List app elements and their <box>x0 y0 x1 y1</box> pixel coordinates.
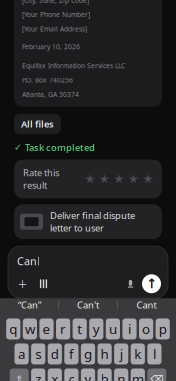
button[interactable]: p <box>156 318 170 339</box>
staticText: [City, State, Zip Code] <box>22 0 89 5</box>
button[interactable]: s <box>31 343 45 364</box>
staticText: w <box>25 320 35 338</box>
button[interactable]: t <box>73 318 87 339</box>
staticText: Equifax Information Services LLC <box>22 61 125 70</box>
staticText: Deliver final dispute letter to user <box>50 209 135 234</box>
staticText: p <box>159 320 167 338</box>
staticText: n <box>117 370 125 381</box>
staticText: s <box>35 345 41 363</box>
button[interactable]: Dictate <box>124 277 137 290</box>
staticText: d <box>51 345 59 363</box>
staticText: Cant <box>137 299 157 311</box>
staticText: All files <box>21 118 54 130</box>
staticText: o <box>142 320 150 338</box>
button[interactable]: “Can” <box>0 294 58 315</box>
button[interactable]: Can't <box>59 294 117 315</box>
staticText: x <box>51 370 58 381</box>
staticText: u <box>109 320 117 338</box>
staticText: Can <box>17 254 37 268</box>
staticText: t <box>77 320 82 338</box>
staticText: v <box>84 370 91 381</box>
button[interactable]: j <box>114 343 128 364</box>
staticText: ⇧ <box>15 374 23 381</box>
button[interactable]: w <box>23 318 37 339</box>
button[interactable]: r <box>56 318 70 339</box>
button[interactable]: Rate star <box>128 174 138 184</box>
button[interactable]: o <box>139 318 153 339</box>
staticText: b <box>101 370 109 381</box>
staticText: ⌫ <box>150 374 163 381</box>
button[interactable]: Send <box>142 274 161 293</box>
staticText: [Your Email Address] <box>22 24 87 33</box>
staticText: l <box>153 345 156 363</box>
button[interactable]: k <box>131 343 145 364</box>
staticText: ★ <box>142 172 153 186</box>
staticText: Rate this result <box>23 166 59 191</box>
staticText: j <box>120 345 123 363</box>
button[interactable]: g <box>81 343 95 364</box>
button[interactable]: n <box>114 368 128 381</box>
staticText: e <box>42 320 50 338</box>
button[interactable]: Cant <box>118 294 175 315</box>
button[interactable]: Delete <box>147 368 166 381</box>
button[interactable]: z <box>31 368 45 381</box>
button[interactable]: d <box>48 343 62 364</box>
button[interactable]: Rate star <box>143 174 153 184</box>
staticText: z <box>35 370 41 381</box>
staticText: h <box>101 345 109 363</box>
button[interactable]: i <box>122 318 137 339</box>
staticText: a <box>18 345 25 363</box>
staticText: g <box>84 345 92 363</box>
staticText: + <box>18 273 27 294</box>
staticText: ✓ <box>14 142 22 153</box>
staticText: Atlanta, GA 30374 <box>22 90 79 99</box>
button[interactable]: l <box>147 343 161 364</box>
staticText: y <box>93 320 100 338</box>
staticText: ↑ <box>146 276 157 291</box>
button[interactable]: f <box>64 343 78 364</box>
staticText: c <box>68 370 74 381</box>
button[interactable]: Rate star <box>85 174 95 184</box>
staticText: r <box>60 320 66 338</box>
button[interactable]: q <box>6 318 20 339</box>
button[interactable]: m <box>131 368 145 381</box>
staticText: q <box>9 320 17 338</box>
button[interactable]: Add attachment <box>15 276 30 291</box>
staticText: Task completed <box>25 141 95 153</box>
staticText: P.O. Box 740256 <box>22 75 73 84</box>
button[interactable]: All files <box>14 114 61 134</box>
staticText: ★ <box>84 172 95 186</box>
button[interactable]: c <box>64 368 78 381</box>
staticText: k <box>134 345 141 363</box>
button[interactable]: b <box>97 368 112 381</box>
staticText: ★ <box>99 172 110 186</box>
button[interactable]: e <box>39 318 54 339</box>
staticText: February 10, 2026 <box>22 42 80 51</box>
button[interactable]: Shift <box>10 368 29 381</box>
button[interactable]: h <box>97 343 112 364</box>
staticText: [Your Phone Number] <box>22 10 90 19</box>
staticText: m <box>132 370 144 381</box>
button[interactable]: Rate star <box>99 174 109 184</box>
button[interactable]: a <box>14 343 29 364</box>
staticText: ★ <box>128 172 139 186</box>
staticText: “Can” <box>18 299 41 311</box>
button[interactable]: v <box>81 368 95 381</box>
button[interactable]: x <box>48 368 62 381</box>
button[interactable]: Tools <box>36 276 51 291</box>
staticText: ★ <box>113 172 124 186</box>
staticText: i <box>128 320 131 338</box>
button[interactable]: Rate star <box>114 174 124 184</box>
staticText: Can't <box>77 299 99 311</box>
button[interactable]: y <box>89 318 103 339</box>
staticText: f <box>69 345 74 363</box>
button[interactable]: u <box>106 318 120 339</box>
